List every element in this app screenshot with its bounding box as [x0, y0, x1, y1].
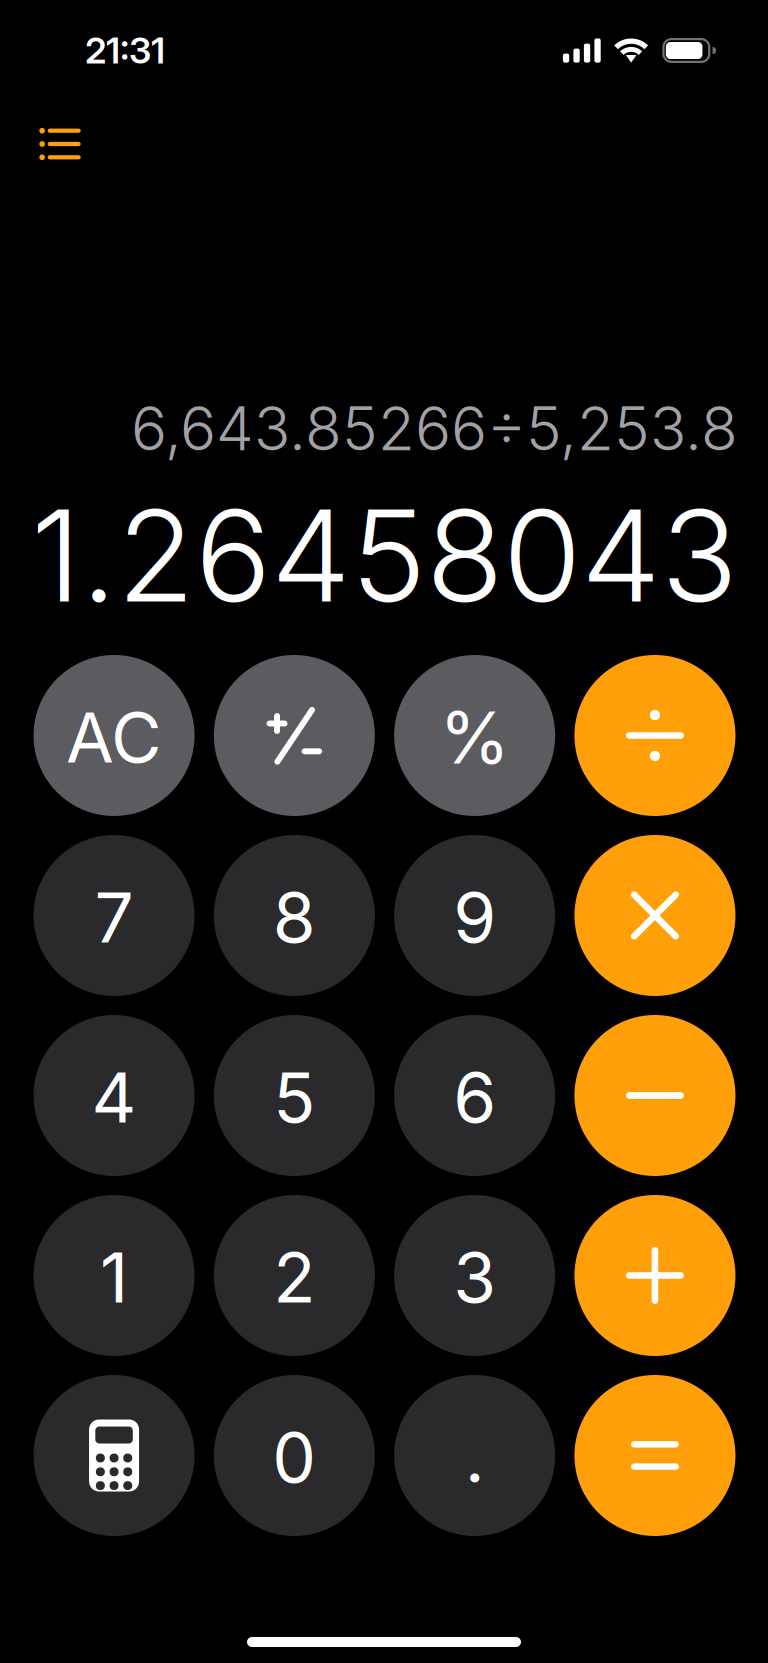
- button[interactable]: 3: [394, 1195, 555, 1356]
- button[interactable]: 4: [34, 1015, 195, 1176]
- button[interactable]: 9: [394, 835, 555, 996]
- button[interactable]: 5: [214, 1015, 375, 1176]
- button[interactable]: 8: [214, 835, 375, 996]
- button[interactable]: Plus Minus: [214, 655, 375, 816]
- staticText: 21:31: [85, 29, 165, 72]
- button[interactable]: Equals: [574, 1375, 735, 1536]
- button[interactable]: Plus: [574, 1195, 735, 1356]
- staticText: 8: [273, 875, 316, 959]
- staticText: 4: [92, 1055, 137, 1139]
- staticText: 6,643.85266÷5,253.8: [131, 392, 738, 465]
- button[interactable]: Divide: [574, 655, 735, 816]
- staticText: 1: [100, 1235, 128, 1319]
- button[interactable]: 6: [394, 1015, 555, 1176]
- staticText: 0: [272, 1415, 316, 1499]
- staticText: 1.26458043: [31, 479, 738, 632]
- button[interactable]: History: [0, 111, 106, 177]
- button[interactable]: 7: [34, 835, 195, 996]
- staticText: 3: [453, 1235, 496, 1319]
- button[interactable]: Minus: [574, 1015, 735, 1176]
- button[interactable]: 0: [214, 1375, 375, 1536]
- staticText: 6: [453, 1055, 496, 1139]
- button[interactable]: Percent: [394, 655, 555, 816]
- staticText: 2: [273, 1235, 315, 1319]
- staticText: AC: [66, 695, 162, 779]
- button[interactable]: 1: [34, 1195, 195, 1356]
- staticText: 5: [273, 1055, 315, 1139]
- staticText: 9: [453, 875, 496, 959]
- staticText: 7: [95, 875, 134, 959]
- button[interactable]: Multiply: [574, 835, 735, 996]
- button[interactable]: Decimal Point: [394, 1375, 555, 1536]
- button[interactable]: All Clear: [34, 655, 195, 816]
- button[interactable]: 2: [214, 1195, 375, 1356]
- button[interactable]: Keypad: [34, 1375, 195, 1536]
- staticText: .: [465, 1415, 485, 1499]
- staticText: %: [439, 694, 510, 781]
